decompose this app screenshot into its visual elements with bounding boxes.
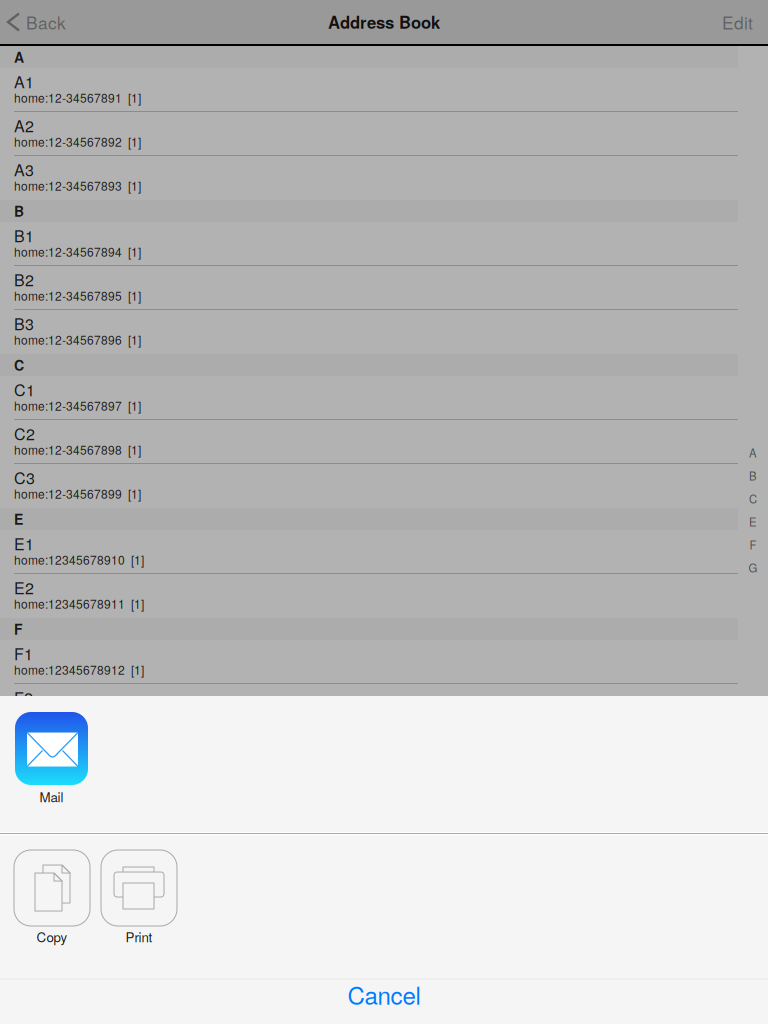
button[interactable]: Edit: [683, 0, 768, 44]
button[interactable]: B1: [0, 222, 738, 266]
button[interactable]: F1: [0, 640, 738, 684]
staticText: home:12-34567896 [1]: [14, 331, 141, 348]
button[interactable]: Copy: [14, 850, 90, 946]
staticText: home:12345678913 [1]: [14, 705, 144, 722]
staticText: Edit: [722, 10, 753, 34]
staticText: home:12-34567897 [1]: [14, 397, 141, 414]
button[interactable]: C1: [0, 376, 738, 420]
button[interactable]: B: [738, 464, 768, 487]
staticText: F1: [14, 642, 33, 665]
staticText: home:12345678910 [1]: [14, 551, 144, 568]
staticText: home:12-34567892 [1]: [14, 133, 141, 150]
button[interactable]: C2: [0, 420, 738, 464]
staticText: home:12-34567893 [1]: [14, 177, 141, 194]
staticText: B3: [14, 312, 34, 335]
staticText: C: [749, 490, 757, 507]
staticText: F: [14, 619, 23, 639]
button[interactable]: C: [738, 487, 768, 510]
staticText: C: [14, 355, 24, 375]
staticText: E1: [14, 532, 34, 555]
staticText: Address Book: [328, 10, 440, 34]
staticText: home:12345678911 [1]: [14, 595, 144, 612]
button[interactable]: E2: [0, 574, 738, 618]
staticText: B2: [14, 268, 34, 291]
button[interactable]: Mail: [15, 712, 88, 808]
staticText: F2: [14, 686, 33, 709]
button[interactable]: Print: [101, 850, 177, 946]
staticText: C1: [14, 378, 35, 401]
button[interactable]: A3: [0, 156, 738, 200]
staticText: home:12-34567898 [1]: [14, 441, 141, 458]
button[interactable]: A1: [0, 68, 738, 112]
staticText: F: [749, 536, 756, 553]
staticText: E: [749, 513, 757, 530]
button[interactable]: F: [738, 533, 768, 556]
staticText: home:12-34567894 [1]: [14, 243, 141, 260]
button[interactable]: B3: [0, 310, 738, 354]
button[interactable]: C3: [0, 464, 738, 508]
staticText: Copy: [36, 927, 67, 946]
staticText: B1: [14, 224, 34, 247]
staticText: A2: [14, 114, 34, 137]
button[interactable]: E1: [0, 530, 738, 574]
staticText: B: [749, 467, 757, 484]
button[interactable]: G: [738, 556, 768, 579]
staticText: G: [748, 559, 757, 576]
staticText: B: [14, 201, 24, 221]
staticText: E2: [14, 576, 34, 599]
staticText: A3: [14, 158, 34, 181]
staticText: C2: [14, 422, 35, 445]
button[interactable]: Back: [0, 0, 110, 44]
staticText: Mail: [39, 787, 63, 806]
staticText: home:12-34567895 [1]: [14, 287, 141, 304]
button[interactable]: F2: [0, 684, 738, 728]
staticText: C3: [14, 466, 35, 489]
button[interactable]: B2: [0, 266, 738, 310]
staticText: home:12-34567891 [1]: [14, 89, 141, 106]
button[interactable]: E: [738, 510, 768, 533]
button[interactable]: Cancel: [0, 972, 768, 1017]
button[interactable]: A2: [0, 112, 738, 156]
staticText: A: [749, 444, 757, 461]
staticText: Print: [125, 927, 152, 946]
button[interactable]: A: [738, 441, 768, 464]
staticText: Back: [26, 10, 66, 34]
staticText: home:12345678912 [1]: [14, 661, 144, 678]
staticText: Cancel: [347, 977, 420, 1012]
staticText: A1: [14, 70, 34, 93]
staticText: E: [14, 509, 23, 529]
staticText: home:12-34567899 [1]: [14, 485, 141, 502]
staticText: A: [14, 47, 24, 67]
